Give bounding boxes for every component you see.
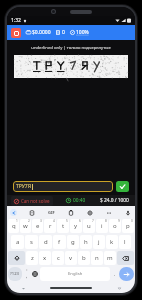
button[interactable]: i <box>96 219 108 233</box>
staticText: s <box>30 238 33 246</box>
button[interactable]: Enter <box>119 267 134 281</box>
button[interactable]: o <box>109 219 121 233</box>
button[interactable]: m <box>104 251 116 265</box>
staticText: p <box>126 222 130 230</box>
button[interactable]: $0.0000 <box>26 29 51 36</box>
staticText: e <box>36 222 40 230</box>
button[interactable]: r <box>44 219 56 233</box>
staticText: k <box>110 238 114 246</box>
staticText: n <box>95 254 99 262</box>
staticText: 1:32 <box>11 17 21 24</box>
staticText: d <box>44 238 48 246</box>
staticText: 5 <box>66 219 68 223</box>
staticText: c <box>57 254 60 262</box>
button[interactable]: English <box>40 267 110 281</box>
staticText: t <box>62 222 65 230</box>
button[interactable]: x <box>39 251 51 265</box>
button[interactable]: Period <box>111 267 118 281</box>
staticText: x <box>43 254 47 262</box>
button[interactable]: k <box>106 235 118 249</box>
staticText: English <box>68 271 83 277</box>
button[interactable]: ТРУ7Я <box>13 181 113 192</box>
staticText: 1 <box>16 219 18 223</box>
staticText: $ 24.0 / 1000 <box>100 197 129 204</box>
staticText: 0 <box>62 29 65 36</box>
staticText: a <box>16 238 20 246</box>
staticText: $0.0000 <box>32 29 51 36</box>
button[interactable]: e <box>32 219 43 233</box>
staticText: 9 <box>118 219 120 223</box>
staticText: 4 <box>53 219 55 223</box>
staticText: m <box>107 254 113 262</box>
button[interactable]: More options <box>104 208 113 217</box>
staticText: u <box>87 222 91 230</box>
button[interactable]: 100% <box>70 29 89 36</box>
button[interactable]: Stickers <box>27 208 36 217</box>
button[interactable]: w <box>20 219 31 233</box>
staticText: 8 <box>105 219 107 223</box>
staticText: b <box>82 254 86 262</box>
button[interactable]: c <box>52 251 64 265</box>
staticText: o <box>113 222 117 230</box>
button[interactable]: Close toolbar <box>10 209 17 216</box>
staticText: . <box>114 271 116 278</box>
staticText: , <box>26 273 28 280</box>
button[interactable]: b <box>78 251 90 265</box>
button[interactable]: j <box>93 235 105 249</box>
button[interactable]: Can not solve <box>11 196 53 206</box>
staticText: 100% <box>76 29 89 36</box>
button[interactable]: n <box>91 251 103 265</box>
staticText: g <box>71 238 75 246</box>
staticText: r <box>49 222 52 230</box>
button[interactable]: Stop <box>11 28 21 38</box>
staticText: f <box>58 238 61 246</box>
button[interactable]: GIF <box>46 208 57 217</box>
staticText: ° <box>26 269 28 273</box>
button[interactable]: d <box>39 235 52 249</box>
button[interactable]: ?123 <box>8 267 22 281</box>
staticText: i <box>101 222 103 230</box>
staticText: 3 <box>40 219 42 223</box>
button[interactable]: Backspace <box>117 251 134 265</box>
button[interactable]: Hide keyboard <box>7 283 39 293</box>
button[interactable]: Switch language <box>31 267 39 281</box>
button[interactable]: Settings <box>85 208 94 217</box>
button[interactable]: Captcha image <box>14 55 128 78</box>
button[interactable]: y <box>70 219 82 233</box>
button[interactable]: z <box>26 251 38 265</box>
staticText: 0 <box>131 219 133 223</box>
staticText: 6 <box>79 219 81 223</box>
staticText: 00:40 <box>73 197 86 204</box>
staticText: underlined only | только подчеркнутые <box>7 45 135 51</box>
staticText: z <box>31 254 34 262</box>
staticText: h <box>84 238 88 246</box>
button[interactable]: t <box>57 219 69 233</box>
button[interactable]: p <box>122 219 134 233</box>
button[interactable]: Shift <box>8 251 25 265</box>
button[interactable]: 0 <box>56 29 65 36</box>
button[interactable]: h <box>80 235 92 249</box>
button[interactable]: l <box>119 235 131 249</box>
button[interactable]: v <box>65 251 77 265</box>
staticText: Can not solve <box>21 198 50 204</box>
staticText: q <box>12 222 16 230</box>
staticText: l <box>124 238 126 246</box>
button[interactable]: Comma <box>23 267 30 281</box>
button[interactable]: a <box>11 235 24 249</box>
button[interactable]: u <box>83 219 95 233</box>
button[interactable]: f <box>53 235 66 249</box>
staticText: 2 <box>28 219 30 223</box>
button[interactable]: g <box>67 235 79 249</box>
button[interactable]: Keyboard options <box>103 283 135 293</box>
staticText: v <box>69 254 73 262</box>
staticText: j <box>98 238 100 246</box>
button[interactable]: q <box>8 219 19 233</box>
staticText: y <box>74 222 78 230</box>
button[interactable]: s <box>25 235 38 249</box>
button[interactable]: Submit answer <box>116 181 129 192</box>
staticText: ТРУ7Я <box>16 183 31 190</box>
staticText: 7 <box>92 219 94 223</box>
button[interactable]: Voice input <box>123 208 132 217</box>
button[interactable]: Clipboard <box>66 208 75 217</box>
staticText: w <box>23 222 28 230</box>
